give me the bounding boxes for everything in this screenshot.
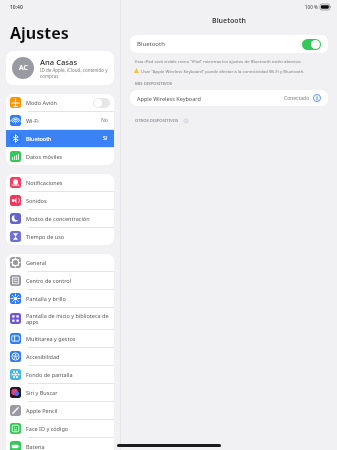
button[interactable]: Bluetooth <box>130 35 328 53</box>
staticText: Face ID y código <box>26 425 110 432</box>
button[interactable]: Centro de control <box>6 272 114 289</box>
button[interactable]: Fondo de pantalla <box>6 366 114 383</box>
staticText: Wi-Fi <box>26 117 101 124</box>
staticText: Ajustes <box>10 22 69 44</box>
button[interactable]: Datos móviles <box>6 148 114 165</box>
button[interactable]: Face ID y código <box>6 420 114 437</box>
button[interactable]: Pantalla y brillo <box>6 290 114 307</box>
button[interactable]: Sonidos <box>6 192 114 209</box>
staticText: Fondo de pantalla <box>26 371 110 378</box>
staticText: Accesibilidad <box>26 353 110 360</box>
button[interactable]: Wi-Fi <box>6 112 114 129</box>
button[interactable]: Apple Pencil <box>6 402 114 419</box>
staticText: OTROS DISPOSITIVOS <box>135 118 179 124</box>
button[interactable]: Batería <box>6 438 114 450</box>
staticText: Sonidos <box>26 197 110 204</box>
staticText: Conectado <box>284 95 310 102</box>
button[interactable]: Accesibilidad <box>6 348 114 365</box>
staticText: Esta iPad será visible como “iPad” mient… <box>135 58 302 64</box>
staticText: Ana Casas <box>40 57 78 67</box>
button[interactable]: Modo Avión <box>6 94 114 111</box>
button[interactable]: Pantalla de inicio y biblioteca de apps <box>6 308 114 329</box>
button[interactable]: Bluetooth <box>6 130 114 147</box>
button[interactable]: Siri y Buscar <box>6 384 114 401</box>
staticText: Bluetooth <box>121 16 337 26</box>
staticText: Batería <box>26 443 110 450</box>
staticText: General <box>26 259 110 266</box>
staticText: Pantalla de inicio y biblioteca de apps <box>26 312 110 326</box>
staticText: Usar “Apple Wireless Keyboard” puede afe… <box>141 68 305 74</box>
staticText: Notificaciones <box>26 179 110 186</box>
staticText: Datos móviles <box>26 153 110 160</box>
button[interactable]: AC <box>6 51 114 85</box>
staticText: Apple Pencil <box>26 407 110 414</box>
staticText: No <box>101 117 108 124</box>
staticText: Modo Avión <box>26 99 93 106</box>
staticText: Bluetooth <box>137 40 302 48</box>
staticText: Modos de concentración <box>26 215 110 222</box>
staticText: Bluetooth <box>26 135 103 142</box>
staticText: MIS DISPOSITIVOS <box>135 81 173 87</box>
staticText: Tiempo de uso <box>26 233 110 240</box>
button[interactable]: Tiempo de uso <box>6 228 114 245</box>
button[interactable]: Apple Wireless Keyboard <box>130 90 328 106</box>
staticText: AC <box>19 63 28 73</box>
staticText: Apple Wireless Keyboard <box>137 95 284 102</box>
button[interactable]: Notificaciones <box>6 174 114 191</box>
staticText: Centro de control <box>26 277 110 284</box>
staticText: Multitarea y gestos <box>26 335 110 342</box>
staticText: Sí <box>103 135 108 142</box>
staticText: Siri y Buscar <box>26 389 110 396</box>
button[interactable]: General <box>6 254 114 271</box>
staticText: 10:40 <box>10 4 23 11</box>
button[interactable]: Modos de concentración <box>6 210 114 227</box>
staticText: Pantalla y brillo <box>26 295 110 302</box>
staticText: ID de Apple, iCloud, contenido y compras <box>40 67 108 79</box>
staticText: 100 % <box>305 4 318 10</box>
button[interactable]: Más información <box>313 94 321 102</box>
button[interactable]: Multitarea y gestos <box>6 330 114 347</box>
